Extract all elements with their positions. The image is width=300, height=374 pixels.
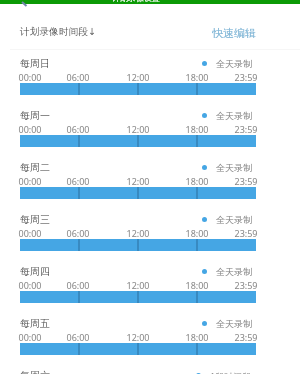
staticText: 1段时间段: [210, 370, 252, 374]
staticText: 12:00: [122, 227, 154, 239]
button[interactable]: 每周五: [0, 317, 300, 369]
staticText: 12:00: [122, 175, 154, 187]
staticText: 00:00: [14, 331, 46, 343]
staticText: 每周一: [20, 109, 50, 122]
staticText: 06:00: [62, 227, 94, 239]
staticText: 00:00: [14, 71, 46, 83]
staticText: 全天录制: [216, 58, 252, 69]
staticText: 23:59: [230, 331, 262, 343]
staticText: 12:00: [122, 331, 154, 343]
button[interactable]: 计划录像时间段↓: [14, 20, 102, 44]
button[interactable]: 每周四: [0, 265, 300, 317]
staticText: 每周五: [20, 317, 50, 330]
staticText: 18:00: [181, 279, 213, 291]
staticText: 全天录制: [216, 266, 252, 277]
staticText: 18:00: [181, 227, 213, 239]
staticText: 00:00: [14, 227, 46, 239]
staticText: 全天录制: [216, 162, 252, 173]
staticText: 18:00: [181, 175, 213, 187]
staticText: 每周二: [20, 161, 50, 174]
staticText: 全天录制: [216, 110, 252, 121]
staticText: 18:00: [181, 123, 213, 135]
staticText: 计划录像时间段↓: [20, 26, 96, 38]
button[interactable]: Back: [20, 2, 29, 11]
staticText: 00:00: [14, 123, 46, 135]
staticText: 每周四: [20, 265, 50, 278]
staticText: 06:00: [62, 175, 94, 187]
staticText: 06:00: [62, 71, 94, 83]
staticText: 23:59: [230, 71, 262, 83]
button[interactable]: 快速编辑: [206, 20, 262, 44]
staticText: 06:00: [62, 279, 94, 291]
staticText: 18:00: [181, 71, 213, 83]
staticText: 每周三: [20, 213, 50, 226]
staticText: 全天录制: [216, 214, 252, 225]
button[interactable]: 每周三: [0, 213, 300, 265]
staticText: 每周六: [20, 369, 50, 374]
staticText: 06:00: [62, 123, 94, 135]
staticText: 23:59: [230, 279, 262, 291]
button[interactable]: 每周日: [0, 57, 300, 109]
button[interactable]: 每周二: [0, 161, 300, 213]
staticText: 00:00: [14, 279, 46, 291]
staticText: 快速编辑: [212, 26, 256, 38]
staticText: 12:00: [122, 279, 154, 291]
staticText: 全天录制: [216, 318, 252, 329]
staticText: 12:00: [122, 123, 154, 135]
staticText: 12:00: [122, 71, 154, 83]
button[interactable]: 计划录像设置: [0, 0, 300, 4]
staticText: 00:00: [14, 175, 46, 187]
staticText: 每周日: [20, 57, 50, 70]
staticText: 23:59: [230, 175, 262, 187]
staticText: 06:00: [62, 331, 94, 343]
staticText: 23:59: [230, 123, 262, 135]
button[interactable]: 每周六: [0, 369, 300, 374]
staticText: 18:00: [181, 331, 213, 343]
button[interactable]: 每周一: [0, 109, 300, 161]
staticText: 23:59: [230, 227, 262, 239]
staticText: 计划录像设置: [112, 0, 160, 3]
